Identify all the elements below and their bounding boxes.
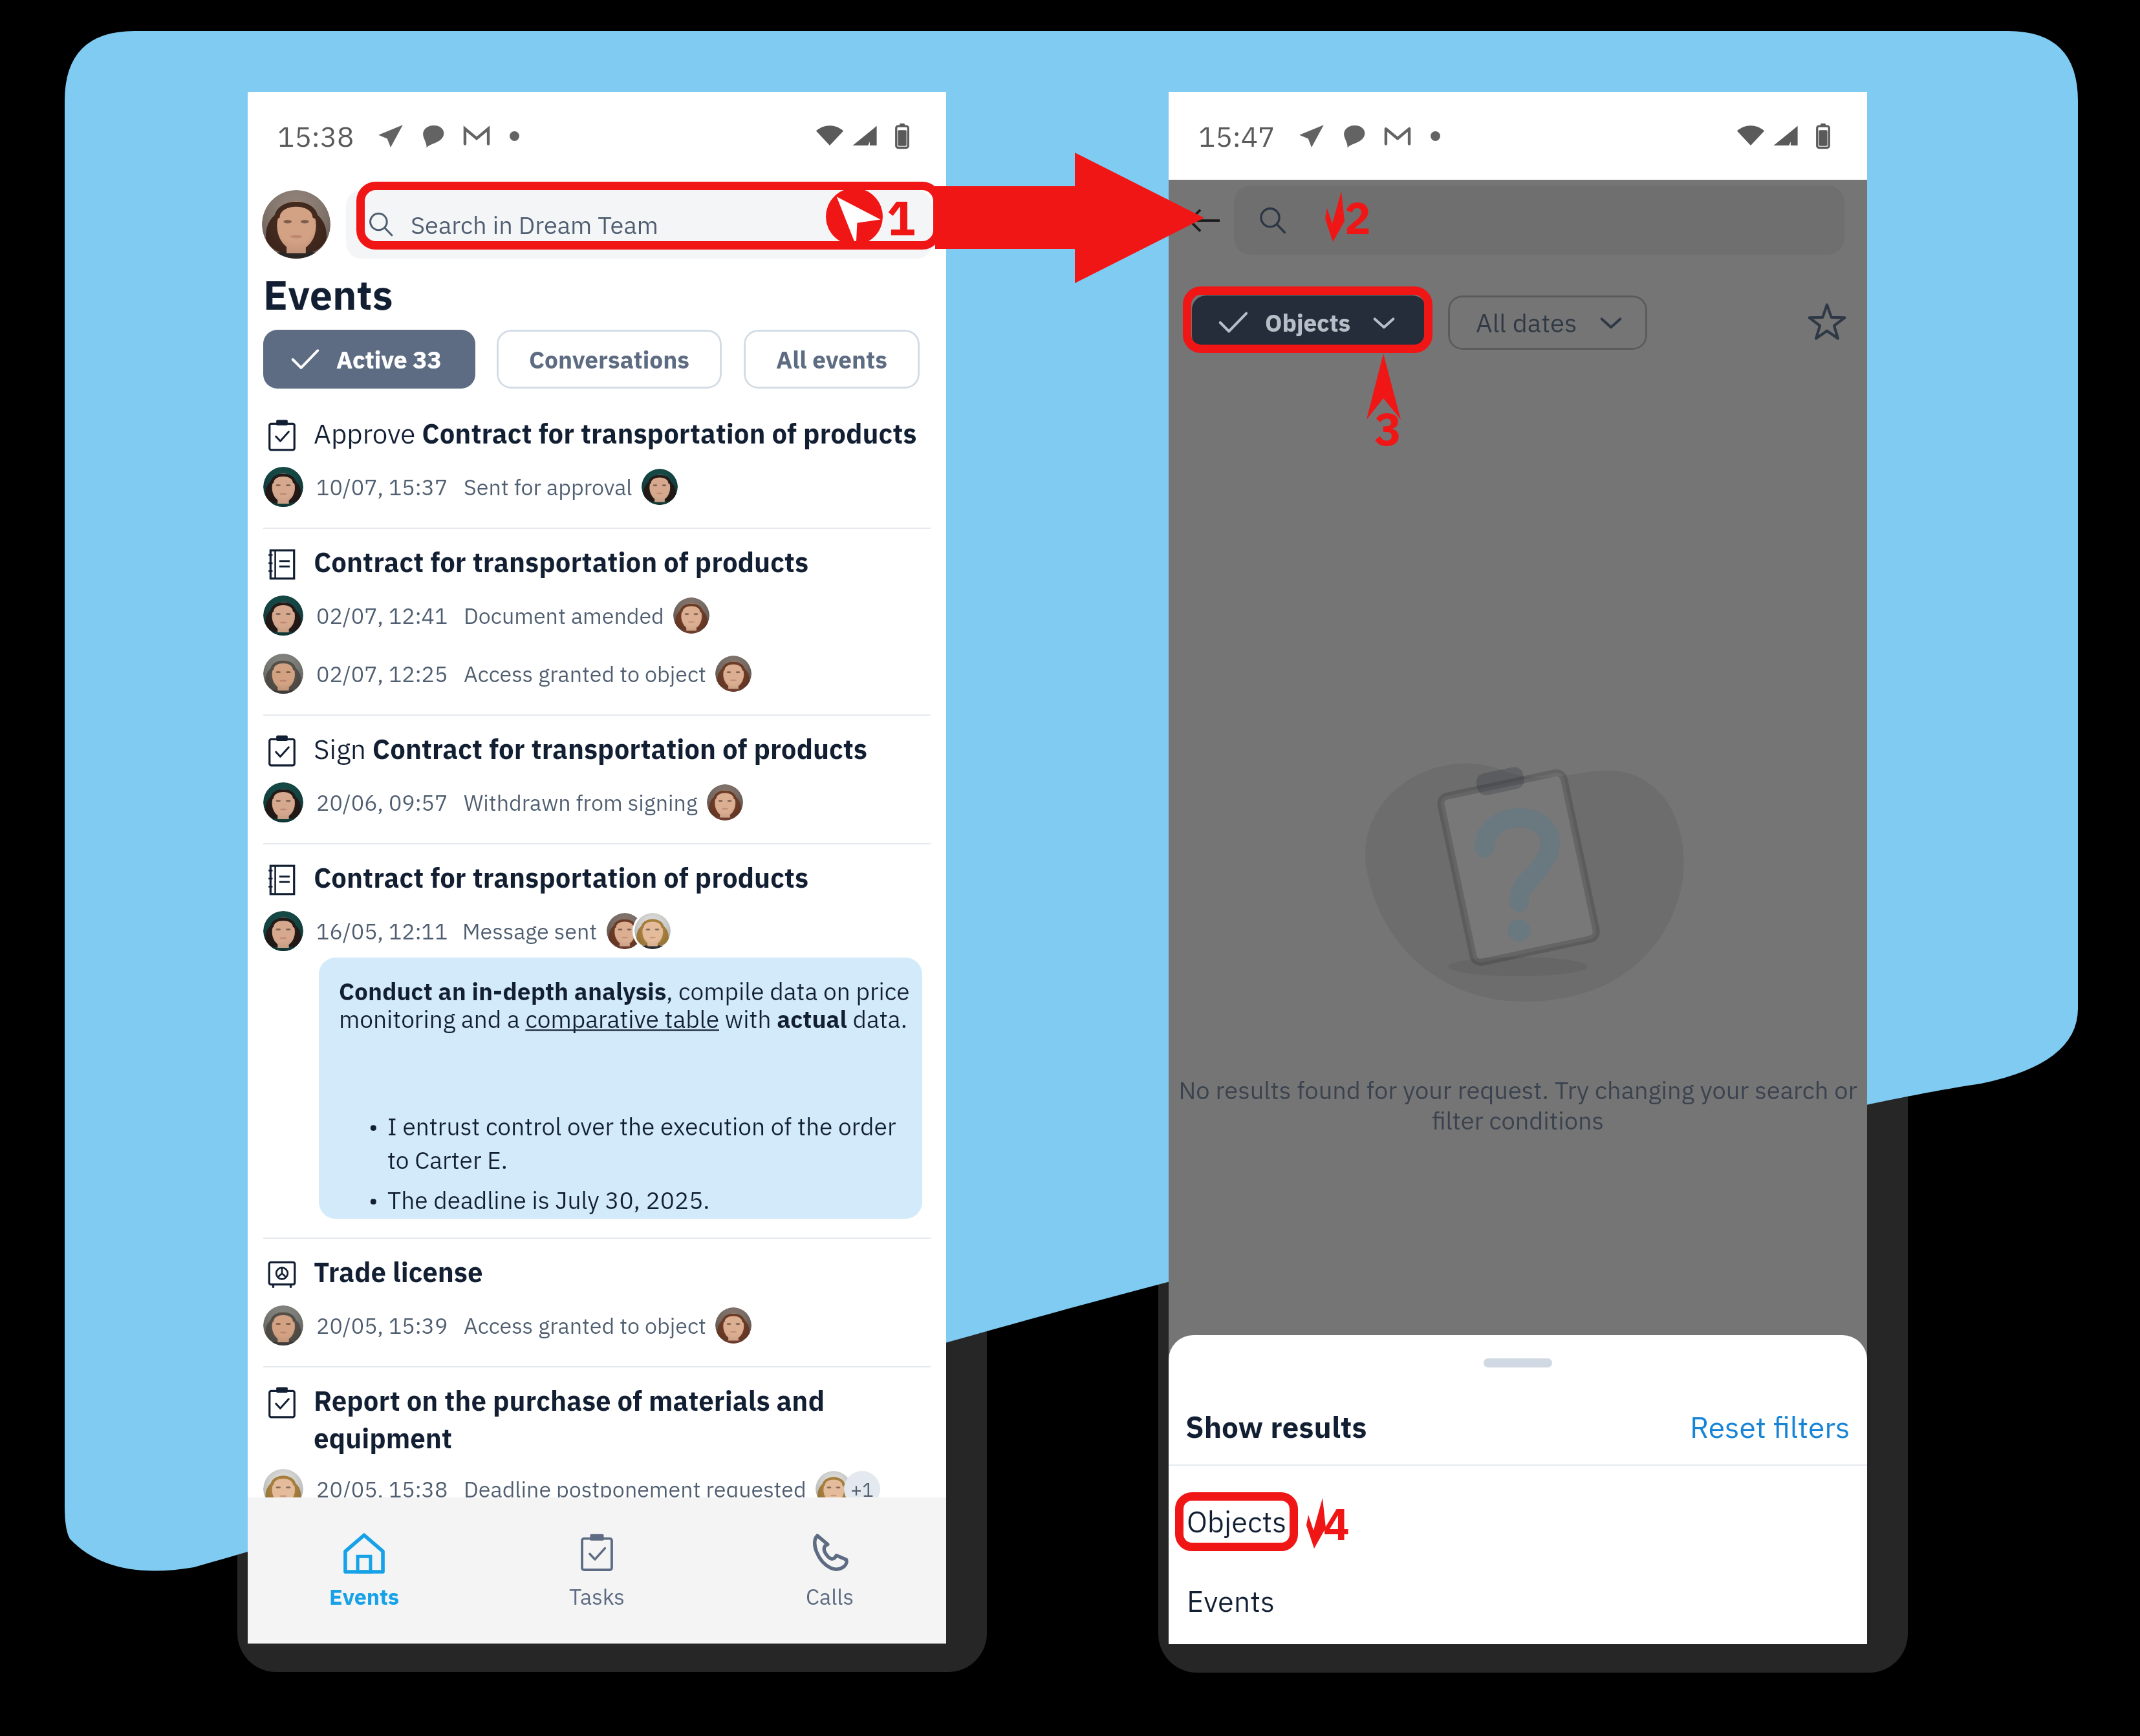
staticText: • (369, 1184, 378, 1216)
staticText: Events (1187, 1582, 1275, 1620)
staticText: Access granted to object (464, 1311, 706, 1340)
staticText: Objects (1187, 1503, 1287, 1541)
staticText: I entrust control over the execution of … (387, 1111, 896, 1175)
staticText: The deadline is July 30, 2025. (387, 1184, 710, 1216)
staticText: All events (776, 344, 887, 375)
staticText: 16/05, 12:11 (316, 917, 448, 945)
staticText: Sent for approval (464, 473, 632, 501)
staticText: 20/06, 09:57 (316, 788, 448, 817)
staticText: Withdrawn from signing (464, 788, 698, 817)
button[interactable]: Active 33 (263, 330, 475, 389)
staticText: 20/05, 15:38 (316, 1475, 448, 1503)
staticText: 2 (1345, 189, 1371, 246)
staticText: Conversations (529, 344, 689, 375)
staticText: Contract for transportation of products (314, 544, 809, 580)
button[interactable]: Objects (1169, 1503, 1867, 1541)
staticText: 02/07, 12:25 (316, 659, 448, 688)
staticText: All dates (1476, 306, 1577, 339)
button[interactable]: Conversations (497, 330, 722, 389)
staticText: 4 (1323, 1495, 1350, 1552)
staticText: Show results (1185, 1408, 1367, 1446)
staticText: Calls (806, 1582, 854, 1611)
staticText: Deadline postponement requested (464, 1475, 806, 1503)
button[interactable]: Sign Contract for transportation of prod… (248, 716, 946, 843)
button[interactable]: Back (1179, 195, 1229, 246)
button[interactable]: Events (1169, 1582, 1867, 1620)
staticText: 10/07, 15:37 (316, 473, 448, 501)
staticText: No results found for your request. Try c… (1171, 1074, 1864, 1137)
staticText: 20/05, 15:39 (316, 1311, 448, 1340)
button[interactable]: Approve Contract for transportation of p… (248, 400, 946, 528)
staticText: 3 (1374, 399, 1401, 458)
staticText: Sign Contract for transportation of prod… (314, 731, 867, 767)
button[interactable]: Search in Dream Team (346, 190, 932, 259)
button[interactable]: Favorite (1801, 297, 1853, 348)
staticText: 02/07, 12:41 (316, 601, 448, 630)
staticText: +1 (850, 1477, 874, 1502)
button[interactable]: Trade license (248, 1239, 946, 1366)
staticText: 1 (887, 186, 916, 248)
staticText: 15:47 (1198, 118, 1275, 155)
staticText: • (369, 1111, 378, 1142)
staticText: Trade license (314, 1254, 483, 1290)
staticText: Report on the purchase of materials and … (314, 1383, 931, 1455)
staticText: Approve Contract for transportation of p… (314, 416, 917, 451)
staticText: Active 33 (336, 344, 442, 375)
button[interactable]: Tasks (481, 1497, 713, 1644)
staticText: Message sent (462, 917, 598, 945)
button[interactable]: Calls (713, 1497, 946, 1644)
button[interactable]: All dates (1448, 295, 1647, 350)
staticText: Conduct an in-depth analysis, compile da… (339, 976, 917, 1034)
staticText: Access granted to object (464, 659, 706, 688)
button[interactable]: Events (248, 1497, 481, 1644)
staticText: Objects (1265, 307, 1351, 338)
button[interactable]: Reset filters (1690, 1408, 1850, 1446)
staticText: Reset filters (1690, 1408, 1850, 1446)
button[interactable]: Report on the purchase of materials and … (248, 1367, 946, 1530)
button[interactable]: Contract for transportation of products (248, 844, 946, 1238)
staticText: Search in Dream Team (411, 209, 658, 241)
staticText: Document amended (464, 601, 664, 630)
button[interactable]: All events (744, 330, 920, 389)
staticText: Contract for transportation of products (314, 860, 809, 895)
staticText: Events (263, 268, 393, 321)
button[interactable]: Profile (262, 190, 330, 259)
staticText: 15:38 (277, 118, 354, 155)
button[interactable]: Contract for transportation of products (248, 529, 946, 714)
button[interactable]: Objects (1192, 295, 1427, 350)
button[interactable]: Search (1234, 186, 1844, 255)
staticText: Tasks (569, 1582, 625, 1611)
staticText: Events (329, 1582, 400, 1611)
